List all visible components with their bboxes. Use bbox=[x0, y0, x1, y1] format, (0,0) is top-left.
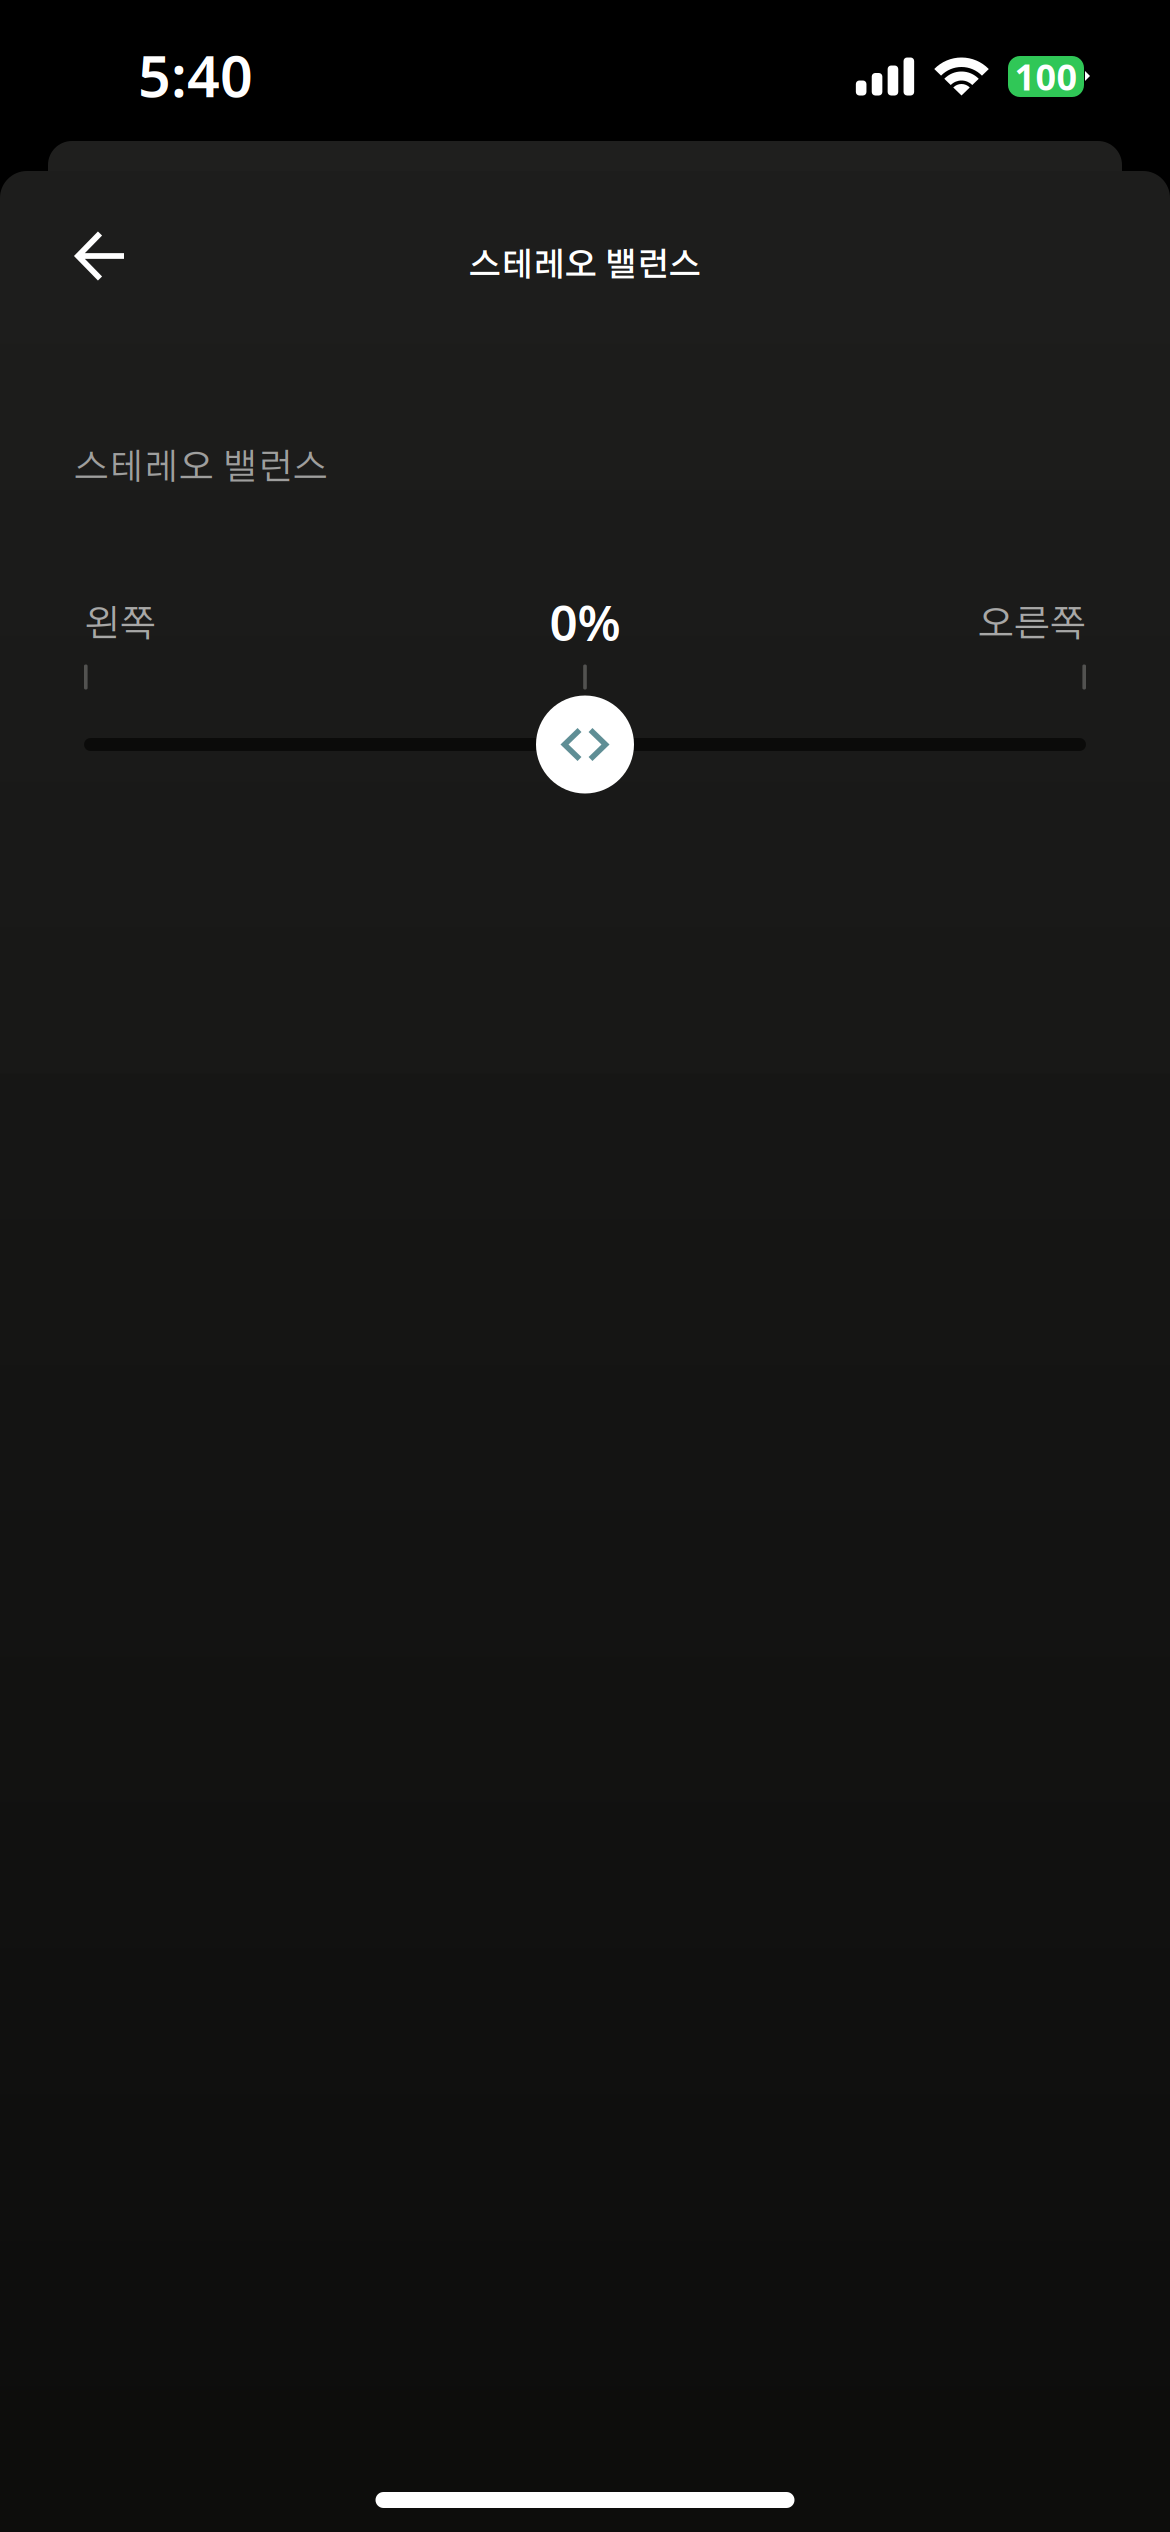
button[interactable]: Balance slider handle bbox=[536, 695, 634, 793]
staticText: 스테레오 밸런스 bbox=[74, 450, 328, 486]
button[interactable]: Back bbox=[37, 208, 161, 304]
staticText: 100 bbox=[1014, 53, 1077, 100]
staticText: 오른쪽 bbox=[978, 606, 1086, 643]
staticText: 왼쪽 bbox=[84, 606, 156, 643]
staticText: 5:40 bbox=[138, 37, 253, 113]
staticText: 스테레오 밸런스 bbox=[469, 250, 701, 282]
staticText: 0% bbox=[549, 589, 620, 654]
